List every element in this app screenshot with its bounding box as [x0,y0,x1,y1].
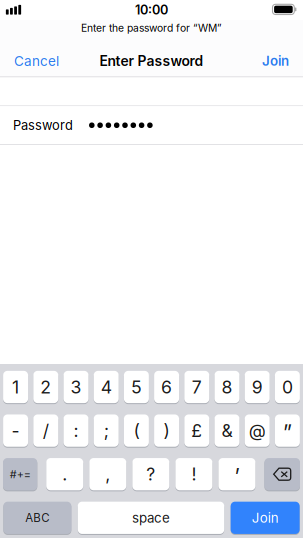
button[interactable]: space [78,502,224,534]
staticText: Cancel [14,53,59,69]
button[interactable]: & [214,414,239,447]
button[interactable]: Delete [264,458,300,490]
button[interactable]: 1 [3,371,28,403]
staticText: Join [252,510,279,526]
staticText: 3 [70,376,81,398]
button[interactable]: - [3,414,28,447]
staticText: 7 [192,376,202,398]
staticText: 9 [252,376,263,398]
staticText: - [12,420,20,441]
button[interactable]: ABC [3,502,71,534]
button[interactable]: 6 [154,371,179,403]
staticText: ABC [25,511,49,525]
staticText: ” [283,420,292,445]
staticText: ( [133,420,139,441]
button[interactable]: ” [275,414,300,447]
staticText: 0 [282,376,293,398]
button[interactable]: ’ [218,458,255,490]
staticText: : [73,420,78,441]
button[interactable]: 0 [275,371,300,403]
button[interactable]: Join [231,502,300,534]
button[interactable]: 8 [214,371,239,403]
button[interactable]: ! [175,458,212,490]
staticText: 5 [131,376,142,398]
button[interactable]: Join [248,50,303,72]
staticText: Password [13,117,73,133]
staticText: ) [164,420,170,441]
staticText: 2 [40,376,51,398]
button[interactable]: 2 [33,371,58,403]
staticText: 8 [221,376,232,398]
button[interactable]: / [33,414,58,447]
staticText: ’ [234,464,239,489]
staticText: @ [249,420,266,441]
button[interactable]: , [89,458,126,490]
button[interactable]: ? [132,458,169,490]
staticText: Enter Password [99,53,203,69]
button[interactable]: . [46,458,83,490]
staticText: ! [191,464,196,485]
staticText: Enter the password for “WM” [81,22,222,34]
staticText: , [105,464,110,485]
button[interactable]: @ [245,414,270,447]
staticText: #+= [10,468,31,481]
button[interactable]: 4 [94,371,119,403]
button[interactable]: ) [154,414,179,447]
button[interactable]: ; [94,414,119,447]
button[interactable]: Cancel [0,50,73,72]
staticText: 4 [101,376,112,398]
button[interactable]: £ [184,414,209,447]
button[interactable]: 7 [184,371,209,403]
button[interactable]: 9 [245,371,270,403]
button[interactable]: #+= [3,458,37,490]
button[interactable]: 5 [124,371,149,403]
staticText: ? [146,464,155,485]
staticText: 10:00 [135,2,168,18]
staticText: ; [104,420,109,441]
button[interactable]: 3 [63,371,88,403]
staticText: & [221,420,232,441]
button[interactable]: : [63,414,88,447]
button[interactable]: ( [124,414,149,447]
staticText: space [132,510,170,526]
staticText: 6 [161,376,172,398]
staticText: . [62,464,67,485]
staticText: / [43,420,49,441]
staticText: 1 [12,376,19,398]
staticText: £ [191,420,202,441]
staticText: Join [262,53,289,69]
